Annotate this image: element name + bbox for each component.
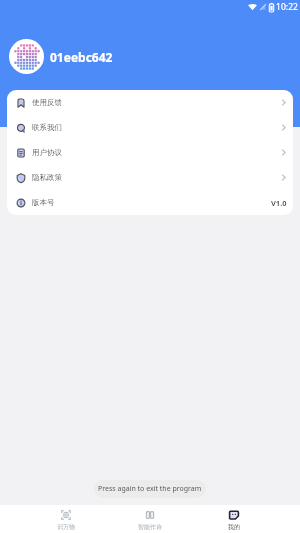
button[interactable]: 版本号 <box>7 190 293 215</box>
button[interactable]: 我的 <box>192 505 276 533</box>
staticText: V1.0 <box>271 198 287 208</box>
staticText: 10:22 <box>276 1 298 13</box>
button[interactable]: 智能作诗 <box>108 505 192 533</box>
staticText: 使用反馈 <box>32 98 62 107</box>
button[interactable]: 用户协议 <box>7 140 293 165</box>
button[interactable]: 联系我们 <box>7 115 293 140</box>
button[interactable]: 使用反馈 <box>7 90 293 115</box>
staticText: 我的 <box>228 523 240 531</box>
staticText: 用户协议 <box>32 148 62 157</box>
staticText: 版本号 <box>32 198 55 207</box>
staticText: 隐私政策 <box>32 173 62 182</box>
staticText: 智能作诗 <box>138 523 162 531</box>
staticText: 识万物 <box>57 523 75 531</box>
staticText: Press again to exit the program <box>98 484 202 494</box>
staticText: 联系我们 <box>32 123 62 132</box>
staticText: 01eebc642 <box>50 49 113 65</box>
button[interactable]: 隐私政策 <box>7 165 293 190</box>
button[interactable]: 识万物 <box>24 505 108 533</box>
